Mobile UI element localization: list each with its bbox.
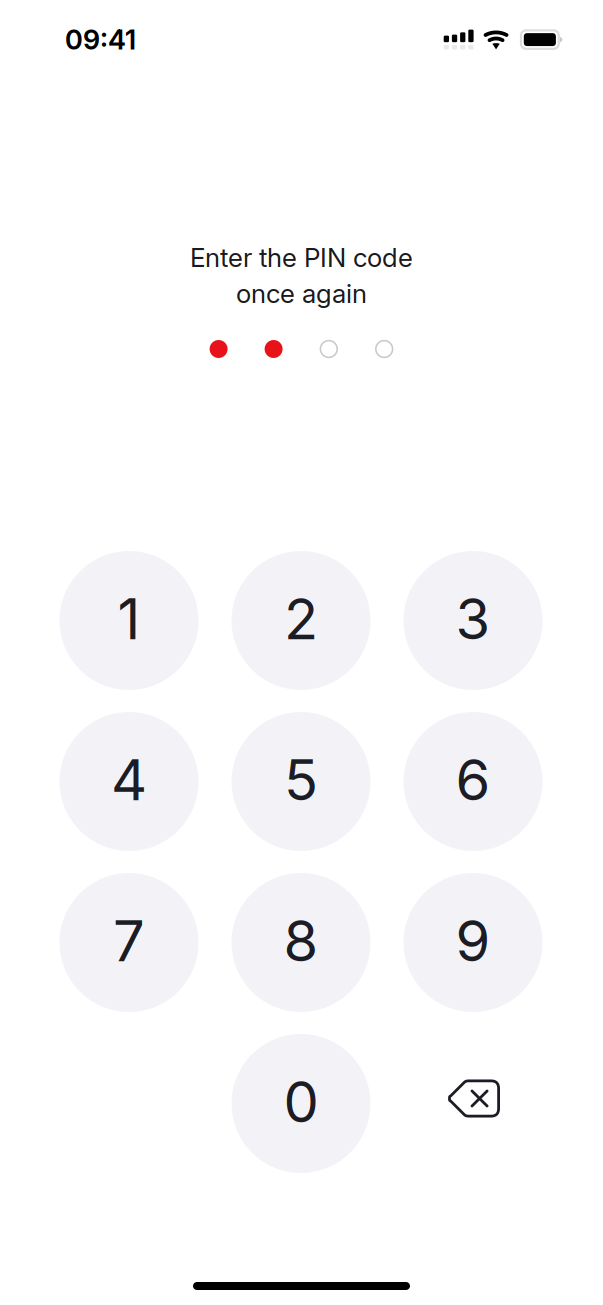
staticText: 9 — [455, 907, 490, 975]
button[interactable]: 6 — [403, 712, 542, 851]
button[interactable]: 4 — [59, 712, 198, 851]
staticText: 6 — [455, 746, 490, 814]
button[interactable]: 9 — [403, 873, 542, 1012]
staticText: 0 — [283, 1068, 318, 1136]
staticText: 7 — [113, 907, 145, 975]
staticText: 3 — [455, 585, 490, 653]
staticText: 09:41 — [65, 23, 136, 56]
button[interactable]: 5 — [231, 712, 370, 851]
staticText: 1 — [117, 585, 140, 653]
button[interactable]: 1 — [59, 551, 198, 690]
staticText: 8 — [283, 907, 318, 975]
button[interactable]: 0 — [231, 1034, 370, 1173]
staticText: 4 — [111, 746, 147, 814]
button[interactable]: Delete — [405, 1029, 544, 1168]
button[interactable]: 3 — [403, 551, 542, 690]
button[interactable]: 7 — [59, 873, 198, 1012]
staticText: Enter the PIN code — [190, 242, 413, 273]
staticText: once again — [236, 278, 367, 309]
button[interactable]: 8 — [231, 873, 370, 1012]
button[interactable]: 2 — [231, 551, 370, 690]
staticText: 2 — [284, 585, 318, 653]
staticText: 5 — [284, 746, 318, 814]
